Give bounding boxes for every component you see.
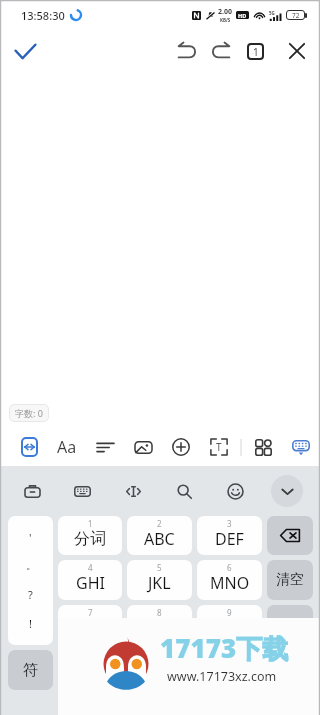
staticText: 字数: 0: [15, 407, 43, 419]
button[interactable]: 2: [127, 516, 192, 555]
button[interactable]: 1: [58, 516, 122, 555]
button[interactable]: Font: [48, 429, 86, 465]
button[interactable]: 8: [127, 605, 192, 645]
button[interactable]: Key: [267, 650, 313, 690]
staticText: 7: [88, 607, 93, 618]
staticText: MNO: [210, 572, 250, 594]
button[interactable]: Redo: [205, 30, 237, 72]
staticText: 17173下载: [160, 630, 289, 666]
button[interactable]: Undo: [169, 30, 205, 72]
button[interactable]: Add: [162, 429, 200, 465]
button[interactable]: 符: [8, 650, 53, 690]
staticText: 72: [292, 11, 300, 20]
button[interactable]: Key: [267, 560, 313, 600]
button[interactable]: Text width: [10, 429, 48, 465]
button[interactable]: Collapse keyboard: [271, 475, 303, 507]
staticText: JKL: [148, 572, 171, 594]
button[interactable]: 3: [197, 516, 262, 555]
staticText: WXYZ: [208, 617, 251, 639]
button[interactable]: Align: [86, 429, 124, 465]
staticText: 4: [88, 562, 93, 573]
staticText: 13:58:30: [21, 8, 65, 23]
button[interactable]: Punctuation: [8, 516, 53, 645]
staticText: 2.00: [218, 7, 232, 17]
button[interactable]: 5: [127, 560, 192, 600]
staticText: ?: [28, 587, 33, 602]
button[interactable]: [197, 650, 262, 690]
staticText: 5G: [269, 10, 275, 16]
button[interactable]: Search: [169, 476, 199, 506]
staticText: GHI: [76, 572, 105, 594]
button[interactable]: 7: [58, 605, 122, 645]
staticText: 6: [227, 562, 232, 573]
staticText: !: [29, 616, 32, 631]
staticText: 3: [227, 518, 232, 529]
staticText: 1: [88, 518, 93, 529]
staticText: 符: [23, 661, 38, 680]
button[interactable]: 0: [127, 650, 192, 690]
staticText: ABC: [144, 528, 175, 550]
staticText: 5: [157, 562, 162, 573]
staticText: 清空: [276, 571, 304, 589]
staticText: HD: [238, 12, 247, 19]
button[interactable]: 6: [197, 560, 262, 600]
staticText: 9: [227, 607, 232, 618]
button[interactable]: Emoji: [220, 476, 250, 506]
button[interactable]: Clipboard: [17, 476, 47, 506]
staticText: DEF: [215, 528, 244, 550]
button[interactable]: Apps: [244, 429, 282, 465]
button[interactable]: Page count: [237, 30, 273, 72]
staticText: KB/S: [220, 17, 231, 23]
staticText: 8: [157, 607, 162, 618]
button[interactable]: Key: [267, 605, 313, 645]
staticText: Aa: [57, 436, 77, 458]
staticText: 1: [253, 45, 259, 59]
staticText: T: [216, 440, 222, 454]
button[interactable]: Text recognition: [200, 429, 238, 465]
staticText: 2: [157, 518, 162, 529]
button[interactable]: Keyboard layout: [67, 476, 97, 506]
button[interactable]: Hide keyboard: [282, 429, 320, 465]
button[interactable]: Insert image: [124, 429, 162, 465]
button[interactable]: [58, 650, 122, 690]
button[interactable]: 4: [58, 560, 122, 600]
staticText: 分词: [74, 529, 106, 549]
button[interactable]: Delete: [267, 516, 313, 555]
staticText: 。: [26, 559, 36, 572]
button[interactable]: Close: [273, 30, 320, 72]
staticText: www.17173xz.com: [167, 668, 277, 685]
button[interactable]: 9: [197, 605, 262, 645]
button[interactable]: Move cursor: [118, 476, 148, 506]
button[interactable]: Done: [0, 30, 50, 72]
staticText: ': [29, 530, 32, 545]
